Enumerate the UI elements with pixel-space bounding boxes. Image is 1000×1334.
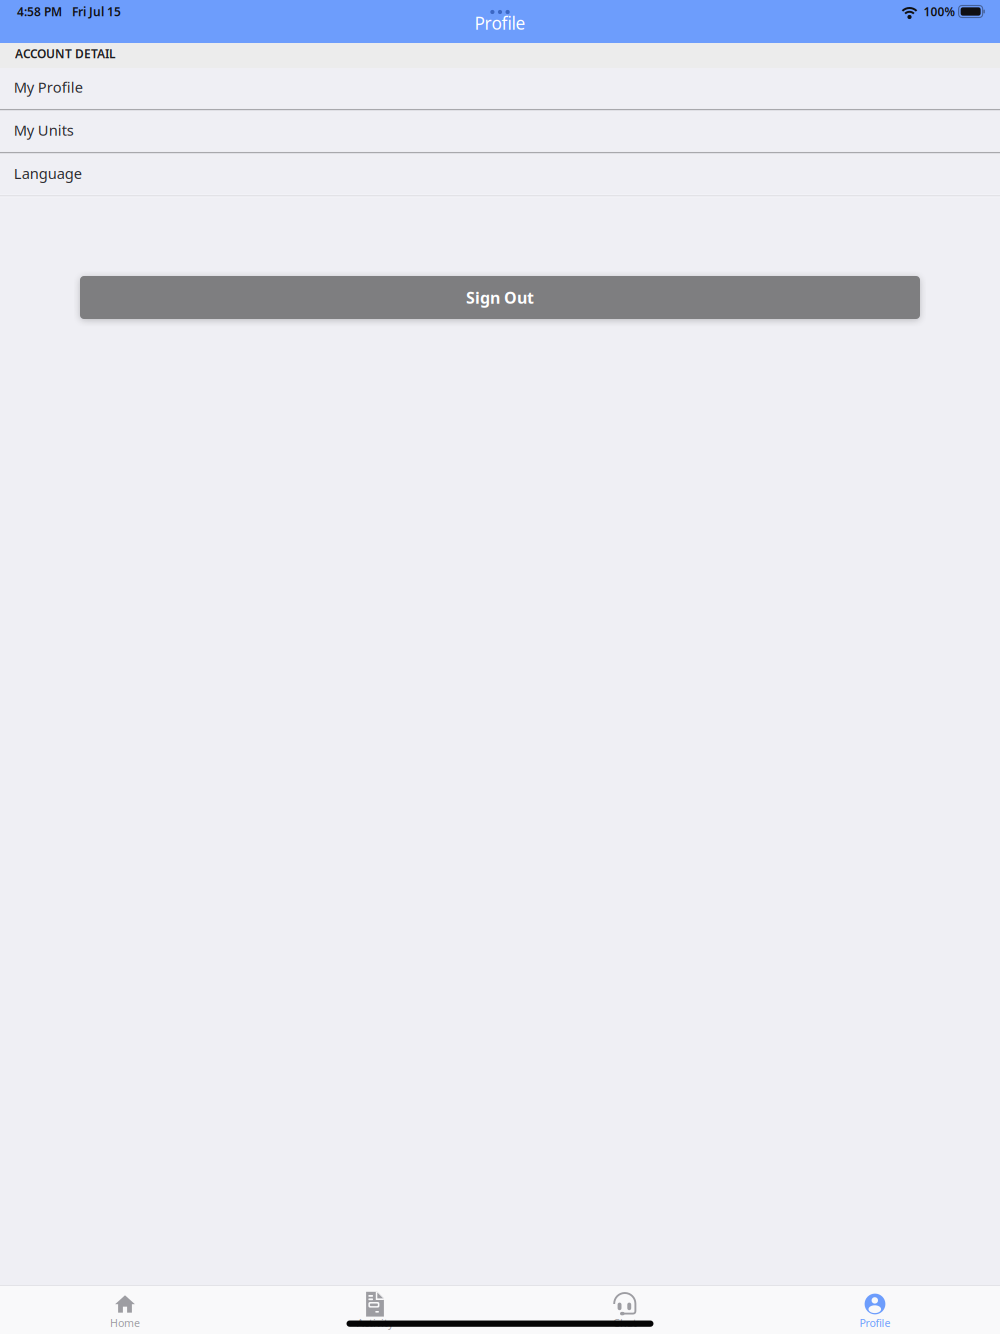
staticText: Home (110, 1316, 140, 1330)
staticText: My Profile (14, 77, 83, 97)
staticText: Chat (613, 1316, 637, 1330)
staticText: 4:58 PM (17, 3, 62, 19)
staticText: ACCOUNT DETAIL (15, 45, 116, 61)
button[interactable]: Profile (750, 1288, 1000, 1334)
staticText: 100% (923, 3, 955, 19)
button[interactable]: Activity (250, 1288, 500, 1334)
staticText: Sign Out (466, 287, 534, 308)
button[interactable]: My Profile (0, 68, 1000, 111)
staticText: Profile (859, 1316, 890, 1330)
button[interactable]: Home (0, 1288, 250, 1334)
staticText: Activity (357, 1316, 393, 1330)
staticText: Profile (474, 11, 525, 34)
staticText: Language (14, 164, 82, 183)
button[interactable]: Sign Out (0, 276, 1000, 319)
staticText: Fri Jul 15 (72, 3, 121, 19)
button[interactable]: Chat (500, 1288, 750, 1334)
button[interactable]: My Units (0, 111, 1000, 154)
staticText: My Units (14, 120, 74, 140)
button[interactable]: Language (0, 154, 1000, 197)
